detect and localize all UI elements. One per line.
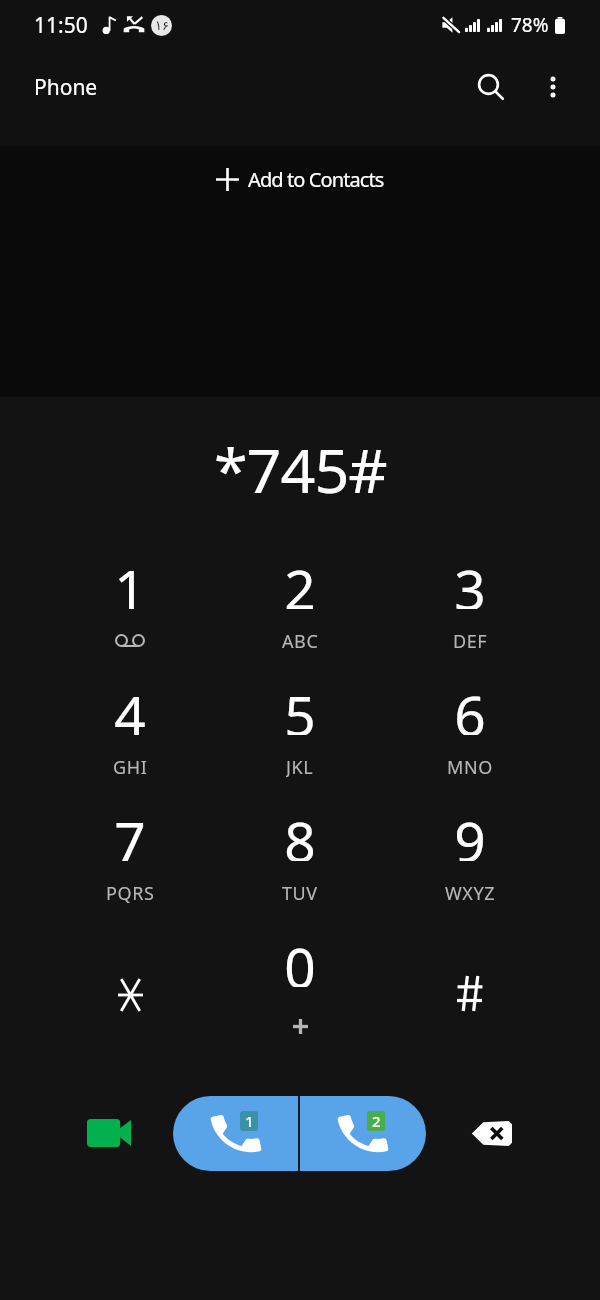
staticText: PQRS — [106, 881, 155, 903]
button[interactable]: Call with SIM 2 — [300, 1096, 426, 1171]
staticText: 1 — [114, 551, 146, 609]
button[interactable]: Call with SIM 1 — [173, 1096, 298, 1171]
staticText: 1 — [245, 1111, 254, 1131]
staticText: GHI — [113, 755, 148, 777]
button[interactable]: 6 — [385, 677, 555, 803]
staticText: 2 — [284, 551, 316, 609]
staticText: 2 — [372, 1111, 381, 1131]
staticText: 78% — [511, 12, 549, 38]
staticText: 0 — [284, 929, 316, 987]
button[interactable]: 1 — [45, 551, 215, 677]
staticText: ABC — [282, 629, 319, 651]
button[interactable]: 5 — [215, 677, 385, 803]
staticText: 6 — [454, 677, 486, 735]
button[interactable]: 4 — [45, 677, 215, 803]
staticText: 3 — [454, 551, 486, 609]
staticText: ۱۶ — [155, 18, 169, 33]
button[interactable]: 7 — [45, 803, 215, 929]
staticText: 9 — [454, 803, 486, 861]
staticText: Phone — [34, 73, 98, 102]
button[interactable]: 0 — [215, 929, 385, 1055]
staticText: Add to Contacts — [248, 166, 384, 193]
button[interactable]: Backspace — [461, 1103, 521, 1163]
button[interactable] — [385, 929, 555, 1055]
staticText: WXYZ — [445, 881, 496, 903]
button[interactable]: Video call — [79, 1103, 139, 1163]
staticText: *745# — [214, 428, 387, 511]
button[interactable]: 9 — [385, 803, 555, 929]
button[interactable]: 2 — [215, 551, 385, 677]
button[interactable]: Add to Contacts — [206, 158, 394, 201]
staticText: 11:50 — [34, 11, 88, 40]
staticText: DEF — [453, 629, 488, 651]
button[interactable]: 3 — [385, 551, 555, 677]
staticText: 5 — [284, 677, 316, 735]
staticText: 8 — [284, 803, 316, 861]
button[interactable]: Search — [465, 61, 517, 113]
staticText: TUV — [282, 881, 318, 903]
button[interactable]: 8 — [215, 803, 385, 929]
button[interactable] — [45, 929, 215, 1055]
staticText: JKL — [286, 755, 314, 777]
staticText: 7 — [114, 803, 146, 861]
staticText: MNO — [447, 755, 493, 777]
staticText: 4 — [114, 677, 146, 735]
button[interactable]: More options — [527, 61, 579, 113]
